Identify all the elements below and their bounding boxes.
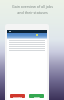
staticText: CANCEL <box>13 95 22 98</box>
staticText: Gain overview of all jobs <box>12 4 53 9</box>
staticText: and their statuses <box>17 10 48 15</box>
button[interactable]: CANCEL <box>10 94 25 98</box>
button[interactable]: SAVE <box>29 94 44 98</box>
staticText: SAVE <box>34 95 40 98</box>
